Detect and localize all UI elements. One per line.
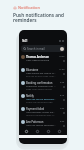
staticText: Notification (18, 5, 40, 10)
staticText: Netlify (26, 94, 34, 98)
staticText: Bluestone (26, 68, 39, 72)
staticText: Thanks for booking! Your reservation (26, 85, 56, 88)
staticText: 50% off on any order over $50 (26, 75, 56, 78)
button[interactable]: Search in mail (21, 45, 65, 52)
button[interactable]: Booking confirmation (21, 80, 65, 93)
button[interactable]: Thomas Anderson (21, 54, 65, 67)
button[interactable]: Mail (23, 128, 30, 135)
staticText: 8:15 (60, 94, 65, 97)
button[interactable]: Chat (34, 128, 41, 135)
staticText: Your site can be deployed in one click (26, 98, 56, 101)
staticText: New AIRBNB booking (26, 59, 50, 62)
staticText: page later details inside (26, 88, 52, 91)
staticText: Booking confirmation (26, 81, 53, 85)
button[interactable]: Netlify (21, 93, 65, 106)
staticText: Ann Patterson (26, 120, 44, 124)
staticText: 7:03 (60, 107, 65, 110)
staticText: Push notifications and reminders (13, 12, 64, 24)
staticText: Search in mail (27, 47, 45, 51)
staticText: 11:02 (59, 68, 65, 71)
staticText: Check the attached code (26, 101, 53, 104)
button[interactable]: Meet (56, 128, 63, 135)
staticText: Thomas Anderson (26, 55, 49, 59)
staticText: 12:35 (59, 55, 65, 58)
staticText: 9:41 (22, 39, 28, 43)
staticText: 6:20 (60, 120, 65, 123)
button[interactable]: Spaces (45, 128, 52, 135)
staticText: Your last month subscriptions (26, 124, 56, 127)
staticText: 9:48 (60, 81, 65, 84)
staticText: New arrivals are now in stock (26, 72, 56, 75)
staticText: Payment failed (26, 107, 45, 111)
button[interactable]: Bluestone (21, 67, 65, 80)
staticText: Your payment: Stellar Plugin Yearly (26, 111, 56, 114)
button[interactable]: Ann Patterson (21, 119, 65, 132)
button[interactable]: Notification (13, 5, 40, 10)
button[interactable]: Payment failed (21, 106, 65, 119)
staticText: Invoice completion was unsuccessful (26, 114, 56, 117)
